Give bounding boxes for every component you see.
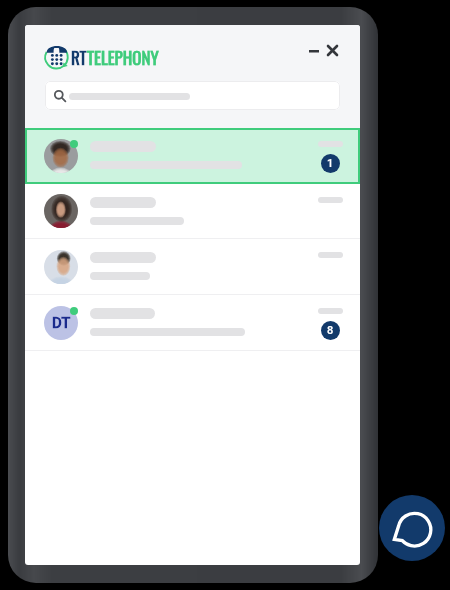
button[interactable] bbox=[45, 81, 340, 110]
staticText: 1 bbox=[327, 157, 334, 170]
staticText: TELEPHONY bbox=[87, 45, 159, 70]
button[interactable]: New chat bbox=[379, 495, 445, 561]
staticText: DT bbox=[52, 314, 71, 332]
button[interactable] bbox=[25, 239, 360, 294]
button[interactable]: 1 bbox=[25, 128, 360, 184]
staticText: RT bbox=[71, 45, 87, 70]
button[interactable] bbox=[25, 184, 360, 238]
staticText: 8 bbox=[327, 324, 334, 337]
button[interactable]: Close bbox=[323, 41, 341, 59]
button[interactable]: Minimize bbox=[305, 41, 323, 59]
button[interactable]: DT bbox=[25, 295, 360, 350]
